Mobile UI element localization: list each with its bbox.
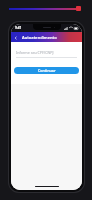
button[interactable]: Voltar [11, 33, 20, 42]
button[interactable]: Informe seu CPF/CNPJ [11, 50, 82, 58]
staticText: Informe seu CPF/CNPJ [16, 50, 77, 55]
staticText: Autoatendimento [22, 35, 57, 40]
staticText: 9:41 [15, 26, 22, 30]
button[interactable]: Continuar [14, 67, 79, 74]
staticText: Continuar [38, 68, 56, 73]
